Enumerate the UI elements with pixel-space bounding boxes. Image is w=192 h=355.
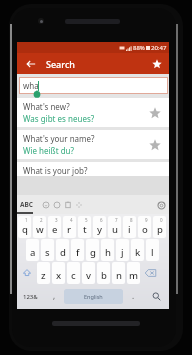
staticText: a <box>30 246 36 259</box>
button[interactable]: What's your name? <box>17 130 169 159</box>
staticText: z <box>41 269 46 282</box>
staticText: 3 <box>55 217 58 223</box>
button[interactable]: l <box>146 239 159 261</box>
button[interactable]: Keyboard tool 4 <box>73 198 84 212</box>
staticText: i <box>128 223 131 236</box>
staticText: English <box>84 293 103 300</box>
staticText: 1 <box>25 217 28 223</box>
button[interactable]: Favorites <box>146 53 167 74</box>
button[interactable]: 9 <box>138 216 151 238</box>
button[interactable]: n <box>112 262 125 284</box>
button[interactable]: Keyboard tool 3 <box>62 198 73 212</box>
button[interactable]: Add to favorites <box>140 98 169 127</box>
staticText: o <box>142 223 148 236</box>
staticText: u <box>112 223 118 236</box>
staticText: 9 <box>145 217 148 223</box>
button[interactable]: Shift <box>17 261 36 284</box>
button[interactable]: v <box>82 262 95 284</box>
staticText: , <box>53 290 56 301</box>
staticText: 7 <box>115 217 118 223</box>
button[interactable]: b <box>97 262 110 284</box>
staticText: 2 <box>40 217 43 223</box>
button[interactable]: a <box>26 239 39 261</box>
staticText: t <box>83 223 87 236</box>
button[interactable]: 6 <box>93 216 106 238</box>
button[interactable]: Keyboard settings <box>156 198 167 212</box>
button[interactable]: s <box>41 239 54 261</box>
button[interactable]: d <box>56 239 69 261</box>
staticText: What's your name? <box>23 133 95 144</box>
staticText: j <box>121 246 124 259</box>
staticText: s <box>45 246 50 259</box>
staticText: 20:47 <box>151 44 167 52</box>
staticText: 88% <box>133 44 145 52</box>
staticText: 6 <box>100 217 103 223</box>
staticText: e <box>52 223 58 236</box>
button[interactable]: h <box>101 239 114 261</box>
button[interactable]: 3 <box>48 216 61 238</box>
button[interactable]: Keyboard tool 2 <box>51 198 62 212</box>
button[interactable]: 7 <box>108 216 121 238</box>
button[interactable]: . <box>123 284 143 309</box>
staticText: 0 <box>160 217 163 223</box>
staticText: v <box>86 269 92 282</box>
staticText: y <box>97 223 103 236</box>
button[interactable]: , <box>44 284 64 309</box>
button[interactable]: Backspace <box>141 261 160 284</box>
button[interactable]: c <box>67 262 80 284</box>
staticText: d <box>60 246 66 259</box>
button[interactable]: 123& <box>17 284 44 309</box>
staticText: 123& <box>23 293 38 301</box>
staticText: l <box>151 246 154 259</box>
staticText: k <box>135 246 141 259</box>
button[interactable]: 0 <box>153 216 166 238</box>
button[interactable]: ABC <box>19 200 34 209</box>
staticText: Wie heißt du? <box>23 145 74 156</box>
button[interactable]: 4 <box>63 216 76 238</box>
staticText: x <box>56 269 62 282</box>
staticText: b <box>101 269 107 282</box>
button[interactable]: 5 <box>78 216 91 238</box>
staticText: . <box>132 290 135 301</box>
button[interactable]: What's new? <box>17 98 169 127</box>
button[interactable]: x <box>52 262 65 284</box>
button[interactable]: Back <box>20 53 41 74</box>
button[interactable]: English <box>64 289 123 304</box>
button[interactable]: k <box>131 239 144 261</box>
staticText: m <box>129 269 138 282</box>
button[interactable]: m <box>127 262 140 284</box>
button[interactable]: z <box>37 262 50 284</box>
staticText: w <box>36 223 44 236</box>
staticText: p <box>157 223 163 236</box>
button[interactable]: Keyboard tool 1 <box>40 198 51 212</box>
staticText: What is your job? <box>23 165 88 176</box>
button[interactable]: 8 <box>123 216 136 238</box>
staticText: 4 <box>70 217 73 223</box>
button[interactable]: f <box>71 239 84 261</box>
button[interactable]: wha <box>19 77 168 94</box>
staticText: n <box>116 269 122 282</box>
staticText: q <box>22 223 28 236</box>
staticText: 8 <box>130 217 133 223</box>
button[interactable]: Add to favorites <box>140 130 169 159</box>
staticText: Search <box>46 58 75 70</box>
staticText: ABC <box>20 200 33 209</box>
staticText: h <box>105 246 111 259</box>
button[interactable]: Search <box>143 284 169 309</box>
button[interactable]: g <box>86 239 99 261</box>
button[interactable]: What is your job? <box>17 162 169 176</box>
button[interactable]: j <box>116 239 129 261</box>
staticText: Was gibt es neues? <box>23 113 95 124</box>
staticText: r <box>67 223 72 236</box>
button[interactable]: 2 <box>33 216 46 238</box>
button[interactable]: 1 <box>18 216 31 238</box>
staticText: f <box>76 246 80 259</box>
staticText: c <box>71 269 76 282</box>
staticText: What's new? <box>23 101 70 112</box>
staticText: wha <box>23 80 39 91</box>
staticText: 5 <box>85 217 88 223</box>
staticText: g <box>90 246 96 259</box>
